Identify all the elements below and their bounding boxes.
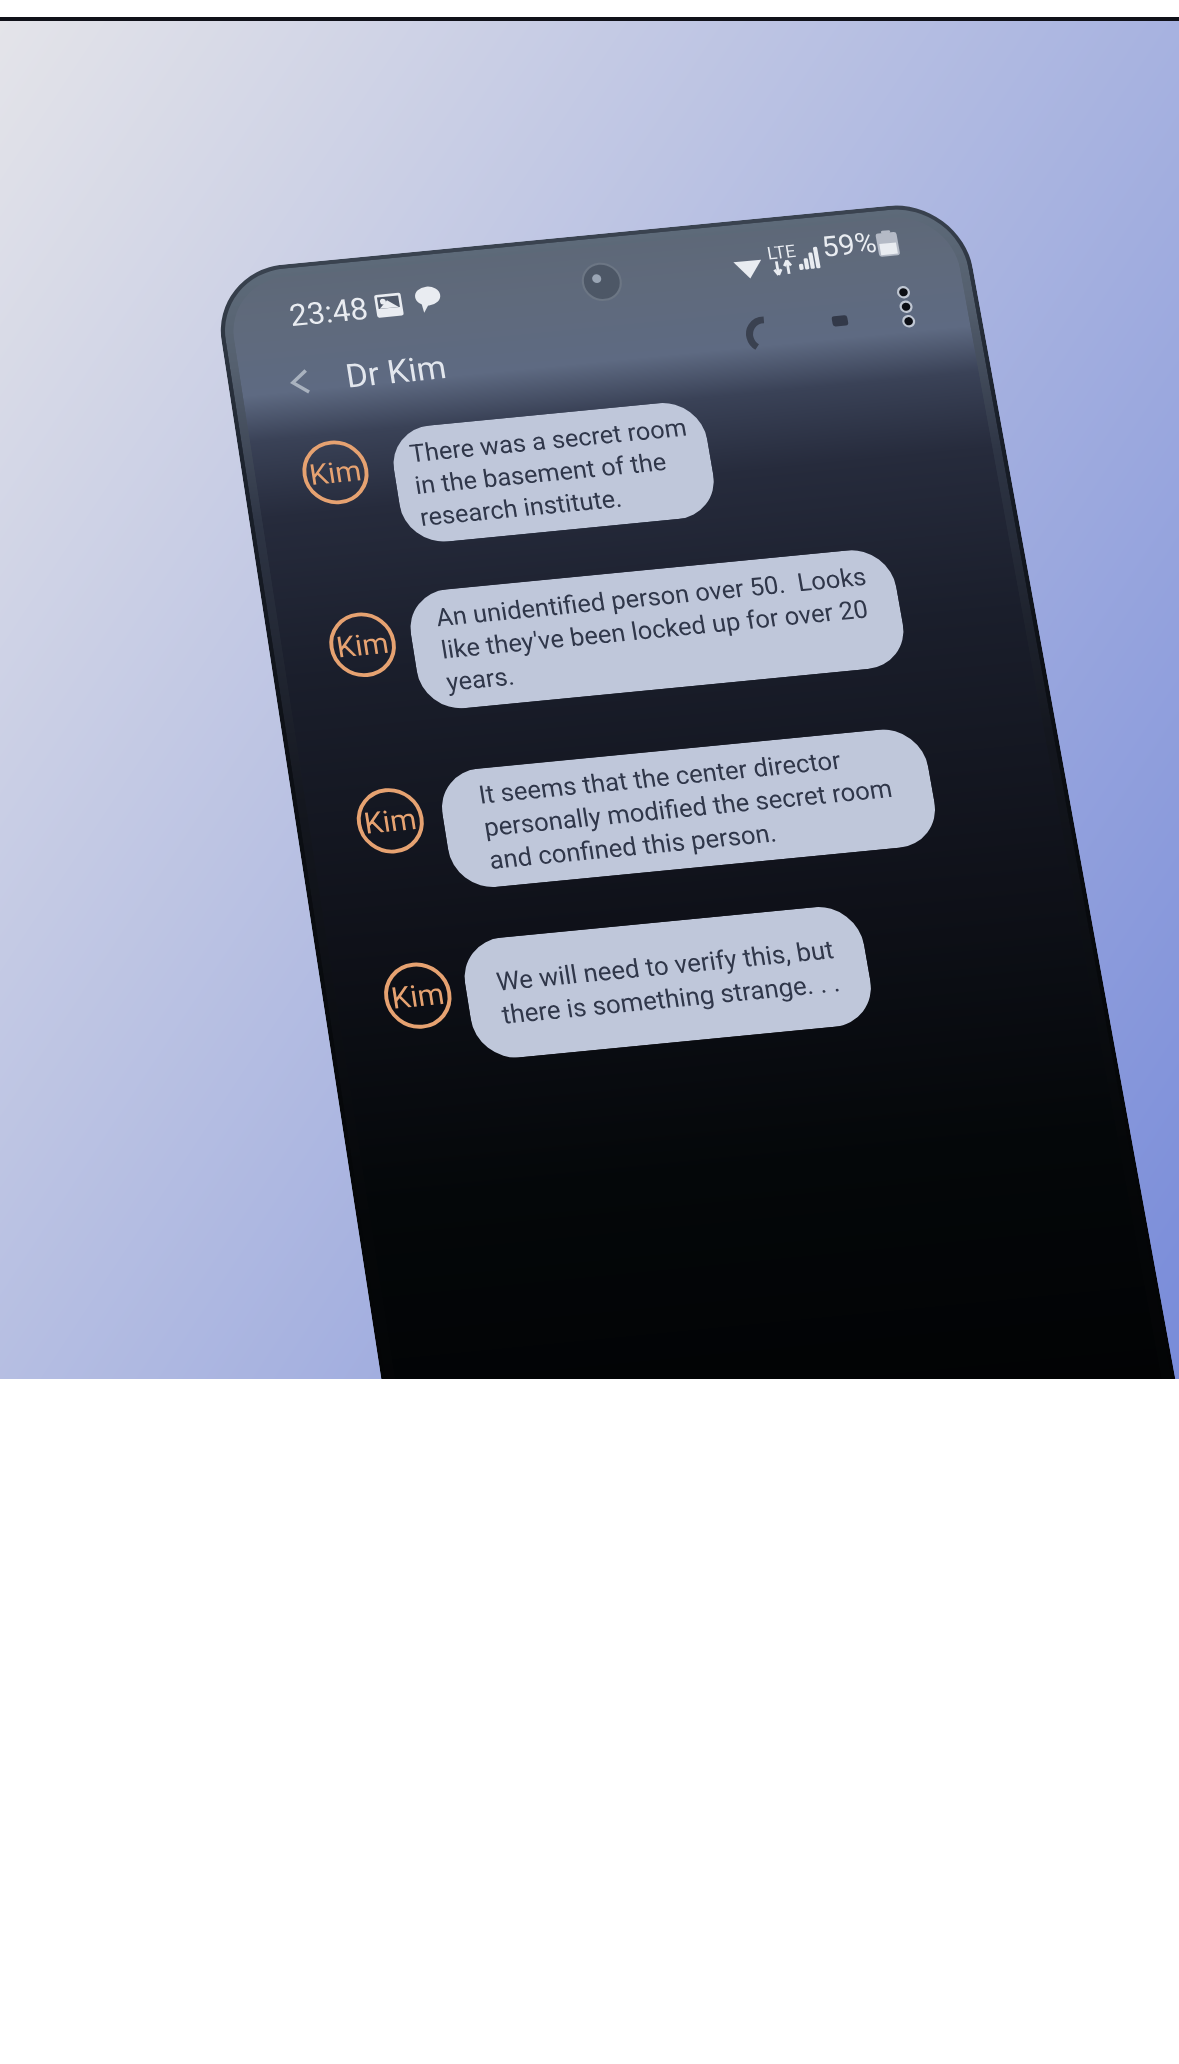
staticText: We will need to verify this, but there i… xyxy=(244,1060,717,1149)
button[interactable]: Video call xyxy=(846,141,926,221)
staticText: There was a secret room in the basement … xyxy=(241,294,637,430)
button[interactable]: Call xyxy=(730,151,810,231)
staticText: An unidentified person over 50. Looks li… xyxy=(241,535,853,671)
button[interactable]: There was a secret room in the basement … xyxy=(215,276,663,447)
button[interactable]: We will need to verify this, but there i… xyxy=(200,1019,760,1189)
button[interactable]: It seems that the center director person… xyxy=(206,777,892,947)
button[interactable]: An unidentified person over 50. Looks li… xyxy=(202,516,892,689)
staticText: It seems that the center director person… xyxy=(261,794,837,930)
